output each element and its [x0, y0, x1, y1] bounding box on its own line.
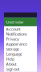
button[interactable]: Privacy — [4, 36, 37, 41]
button[interactable]: Appearance — [4, 41, 37, 46]
button[interactable]: About — [4, 61, 37, 66]
staticText: About — [6, 61, 16, 67]
staticText: Sign out — [6, 66, 19, 72]
button[interactable]: Account — [4, 26, 37, 31]
staticText: Notifications — [6, 31, 27, 37]
staticText: Overview — [6, 19, 23, 25]
staticText: Account — [6, 26, 20, 32]
staticText: Storage — [6, 46, 19, 52]
staticText: Language — [6, 51, 22, 57]
button[interactable]: Sign out — [4, 66, 37, 71]
staticText: Help — [6, 56, 14, 62]
staticText: Appearance — [6, 41, 27, 47]
button[interactable]: Language — [4, 51, 37, 56]
button[interactable]: Help — [4, 56, 37, 61]
button[interactable]: Storage — [4, 46, 37, 51]
staticText: Privacy — [6, 36, 19, 42]
button[interactable]: Notifications — [4, 31, 37, 36]
